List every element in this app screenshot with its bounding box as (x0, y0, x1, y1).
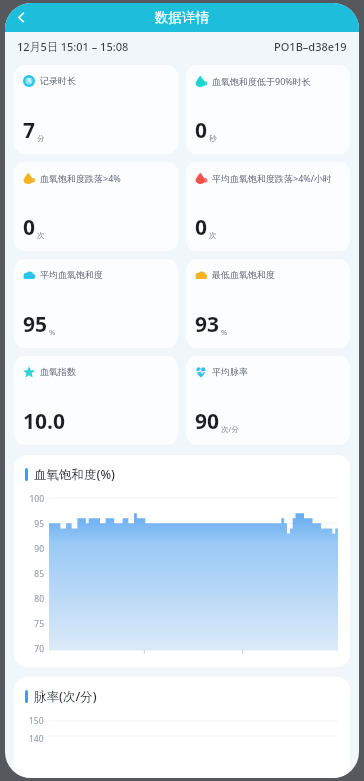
staticText: 次/分 (221, 424, 239, 434)
button[interactable]: 血氧指数 (14, 356, 178, 445)
staticText: 0 (195, 213, 208, 242)
staticText: 秒 (209, 134, 217, 143)
staticText: 记录时长 (40, 75, 76, 86)
staticText: 95 (23, 310, 48, 339)
staticText: 平均血氧饱和度跌落>4%/小时 (212, 172, 333, 184)
staticText: 次 (209, 231, 217, 240)
staticText: 7 (23, 116, 36, 145)
staticText: 分 (37, 134, 45, 143)
staticText: 血氧饱和度跌落>4% (40, 172, 121, 184)
button[interactable]: 血氧饱和度(%) (14, 455, 350, 667)
staticText: % (221, 327, 228, 337)
button[interactable]: 血氧饱和度低于90%时长 (186, 65, 350, 154)
staticText: 血氧饱和度(%) (34, 466, 115, 483)
staticText: 次 (37, 231, 45, 240)
staticText: 90 (34, 543, 44, 555)
staticText: 最低血氧饱和度 (212, 269, 275, 280)
button[interactable]: 平均血氧饱和度 (14, 259, 178, 348)
staticText: 0 (195, 116, 208, 145)
staticText: 70 (34, 643, 44, 655)
staticText: 90 (195, 407, 220, 436)
staticText: % (49, 327, 56, 337)
button[interactable]: 脉率(次/分) (14, 677, 350, 778)
staticText: PO1B–d38e19 (274, 39, 347, 54)
button[interactable]: 记录时长 (14, 65, 178, 154)
staticText: 血氧饱和度低于90%时长 (212, 75, 311, 87)
staticText: 脉率(次/分) (34, 688, 97, 705)
staticText: 0 (23, 213, 36, 242)
staticText: 12月5日 15:01 – 15:08 (17, 39, 129, 54)
staticText: 75 (34, 618, 44, 630)
button[interactable]: 最低血氧饱和度 (186, 259, 350, 348)
button[interactable]: Back (5, 3, 37, 32)
staticText: 80 (34, 593, 44, 605)
staticText: 150 (29, 715, 44, 727)
button[interactable]: 平均脉率 (186, 356, 350, 445)
button[interactable]: 血氧饱和度跌落>4% (14, 162, 178, 251)
staticText: 95 (34, 518, 44, 530)
staticText: 血氧指数 (40, 366, 76, 377)
staticText: 平均脉率 (212, 366, 248, 377)
staticText: 100 (29, 493, 44, 505)
staticText: 85 (34, 568, 44, 580)
staticText: 93 (195, 310, 220, 339)
staticText: 平均血氧饱和度 (40, 269, 103, 280)
staticText: 140 (29, 733, 44, 745)
button[interactable]: 平均血氧饱和度跌落>4%/小时 (186, 162, 350, 251)
staticText: 数据详情 (155, 9, 209, 26)
staticText: 10.0 (23, 407, 65, 436)
